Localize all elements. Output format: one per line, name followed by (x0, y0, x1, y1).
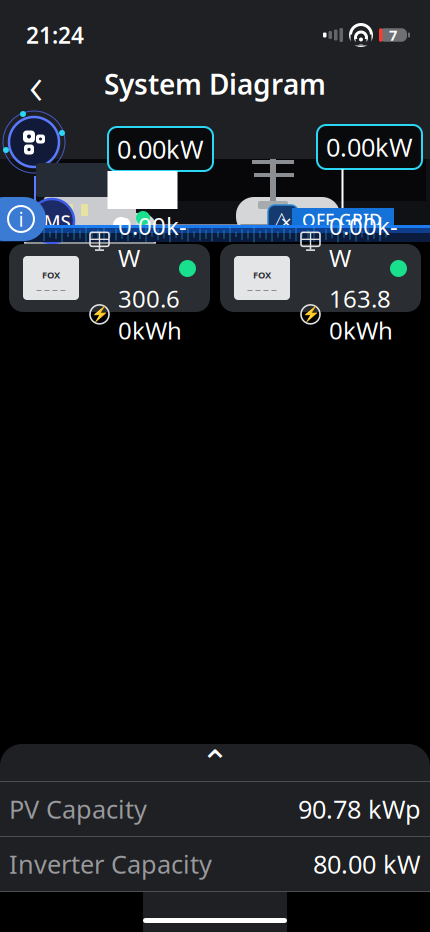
staticText: 21:24 (26, 20, 84, 50)
staticText: ⚡ (301, 306, 319, 323)
staticText: 0.00kW (329, 210, 398, 273)
staticText: 0.00kW (117, 132, 204, 166)
staticText: 0.00kW (326, 130, 413, 164)
button[interactable]: Back (10, 61, 62, 107)
staticText: OFF GRID (302, 208, 382, 231)
staticText: ⚡ (90, 306, 108, 323)
staticText: Inverter Capacity (9, 847, 212, 881)
staticText: System Diagram (104, 65, 326, 103)
staticText: ‹ (29, 49, 43, 119)
staticText: FOX (253, 269, 271, 281)
staticText: FOX (42, 269, 60, 281)
staticText: ⌃ (200, 743, 229, 782)
staticText: i (18, 206, 23, 232)
button[interactable]: Information (0, 197, 46, 241)
button[interactable]: FOX (220, 244, 421, 312)
staticText: 300.60kWh (118, 282, 182, 346)
staticText: △ (275, 208, 288, 228)
staticText: PV Capacity (9, 792, 147, 826)
staticText: 7 (389, 25, 397, 45)
button[interactable]: FOX (9, 244, 210, 312)
staticText: ✕ (280, 215, 292, 231)
staticText: 90.78 kWp (298, 792, 421, 826)
staticText: 80.00 kW (313, 847, 421, 881)
staticText: 163.80kWh (329, 282, 393, 346)
button[interactable]: Collapse details (0, 744, 430, 781)
staticText: 0.00kW (118, 210, 187, 273)
staticText: EMS (33, 209, 70, 233)
